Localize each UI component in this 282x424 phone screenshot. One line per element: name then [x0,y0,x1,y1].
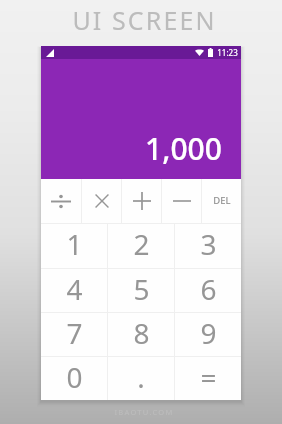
button[interactable]: = [175,357,241,400]
button[interactable]: Plus [122,179,161,223]
staticText: 11:23 [217,47,238,58]
staticText: 8 [133,314,150,352]
staticText: 0 [66,358,83,396]
button[interactable]: 7 [41,313,107,356]
staticText: 3 [200,225,217,263]
button[interactable]: 0 [41,357,107,400]
staticText: . [137,358,145,396]
button[interactable]: 5 [108,269,174,312]
staticText: 1 [66,225,83,263]
staticText: 7 [66,314,83,352]
staticText: UI SCREEN [72,3,217,37]
button[interactable]: Minus [162,179,201,223]
button[interactable]: Multiply [82,179,121,223]
button[interactable]: 4 [41,269,107,312]
button[interactable]: 8 [108,313,174,356]
button[interactable]: 6 [175,269,241,312]
button[interactable]: DEL [202,179,241,223]
button[interactable]: 3 [175,224,241,268]
staticText: 4 [66,270,83,308]
staticText: IBAOTU.COM [114,407,174,417]
button[interactable]: 2 [108,224,174,268]
staticText: 2 [133,225,150,263]
staticText: 5 [133,270,150,308]
staticText: DEL [213,194,231,207]
button[interactable]: Divide [41,179,81,223]
staticText: = [200,358,217,396]
staticText: 9 [200,314,217,352]
staticText: 6 [200,270,217,308]
staticText: 1,000 [145,128,222,169]
button[interactable]: 1 [41,224,107,268]
button[interactable]: 9 [175,313,241,356]
button[interactable]: . [108,357,174,400]
